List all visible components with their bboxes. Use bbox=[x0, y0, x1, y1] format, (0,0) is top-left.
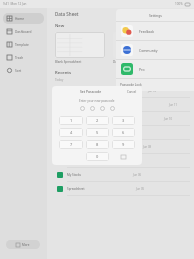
button[interactable]: Spreadsheet bbox=[55, 182, 190, 195]
staticText: Trash bbox=[15, 56, 24, 60]
other: Scan data from picture bbox=[134, 37, 150, 53]
button[interactable] bbox=[55, 32, 105, 58]
staticText: Spreadsheet bbox=[67, 187, 85, 191]
staticText: Untitled Spreadsheet bbox=[67, 89, 97, 93]
button[interactable]: Pro bbox=[116, 60, 194, 78]
staticText: 6 bbox=[122, 130, 125, 135]
button[interactable]: Sort bbox=[3, 65, 44, 76]
button[interactable]: 9 bbox=[112, 140, 135, 149]
staticText: Sort bbox=[15, 69, 22, 73]
staticText: Cancel bbox=[127, 90, 137, 94]
button[interactable]: Passcode Lock bbox=[116, 79, 194, 90]
button[interactable]: Feedback bbox=[116, 22, 194, 40]
staticText: My Stocks bbox=[67, 131, 82, 135]
button[interactable]: Template bbox=[3, 39, 44, 50]
button[interactable]: 1 bbox=[59, 116, 83, 125]
staticText: New bbox=[55, 23, 65, 29]
button[interactable]: 0 bbox=[86, 152, 109, 161]
button[interactable]: 3 bbox=[112, 116, 135, 125]
staticText: 8 bbox=[96, 142, 99, 147]
button[interactable]: My Stocks bbox=[55, 154, 190, 167]
staticText: Passcode Lock bbox=[120, 83, 142, 87]
staticText: Smartphone — Market Research bbox=[67, 117, 113, 121]
staticText: 7 bbox=[70, 142, 73, 147]
staticText: Dashboard bbox=[15, 30, 32, 34]
button[interactable]: Dashboard bbox=[3, 26, 44, 37]
staticText: 9 bbox=[122, 142, 125, 147]
staticText: Jun 06 bbox=[133, 173, 142, 177]
staticText: Set Passcode bbox=[80, 89, 102, 94]
staticText: From bbox=[122, 41, 130, 45]
button[interactable]: More bbox=[6, 240, 40, 249]
staticText: Template bbox=[15, 43, 29, 47]
staticText: Pro bbox=[139, 67, 145, 72]
staticText: Home bbox=[15, 17, 25, 21]
staticText: 3 bbox=[122, 118, 125, 123]
staticText: 100% bbox=[175, 2, 183, 6]
button[interactable]: My Stocks bbox=[55, 126, 190, 139]
button[interactable]: Sales report 2021 bbox=[55, 140, 190, 153]
staticText: Data Sheet bbox=[55, 11, 79, 17]
staticText: 1 bbox=[70, 118, 73, 123]
staticText: Recents bbox=[55, 70, 72, 76]
staticText: 0 bbox=[96, 154, 99, 159]
staticText: Jun 10 bbox=[164, 117, 173, 121]
staticText: Stationery parts report — Cubic tables bbox=[67, 103, 118, 107]
button[interactable]: 5 bbox=[86, 128, 109, 137]
button[interactable]: From bbox=[113, 32, 157, 58]
staticText: Today bbox=[55, 78, 64, 82]
staticText: 9:41 Mon 12 Jun bbox=[3, 2, 27, 6]
staticText: Feedback bbox=[139, 29, 155, 34]
staticText: Jun 11 bbox=[169, 103, 178, 107]
staticText: Blank Spreadsheet bbox=[55, 60, 82, 64]
staticText: More bbox=[22, 243, 30, 247]
button[interactable]: 7 bbox=[59, 140, 83, 149]
staticText: Sales report 2021 bbox=[67, 145, 92, 149]
staticText: 4 bbox=[70, 130, 73, 135]
staticText: Data from Picture bbox=[113, 60, 138, 64]
staticText: Community bbox=[139, 48, 158, 53]
button[interactable]: 4 bbox=[59, 128, 83, 137]
button[interactable]: Cancel bbox=[126, 89, 138, 95]
staticText: Settings bbox=[149, 13, 162, 18]
button[interactable]: 6 bbox=[112, 128, 135, 137]
staticText: Jun 05 bbox=[136, 187, 145, 191]
staticText: Enter your new passcode bbox=[79, 99, 115, 103]
staticText: 5 bbox=[96, 130, 99, 135]
button[interactable]: Delete bbox=[112, 152, 135, 161]
button[interactable]: Settings bbox=[116, 9, 194, 21]
button[interactable]: 8 bbox=[86, 140, 109, 149]
button[interactable]: Smartphone — Market Research bbox=[55, 112, 190, 125]
button[interactable]: Home bbox=[3, 13, 44, 24]
button[interactable]: Stationery parts report — Cubic tables bbox=[55, 98, 190, 111]
staticText: Jun 12 bbox=[148, 89, 157, 93]
button[interactable]: Trash bbox=[3, 52, 44, 63]
staticText: My Stocks bbox=[67, 173, 82, 177]
button[interactable]: My Stocks bbox=[55, 168, 190, 181]
staticText: 2 bbox=[96, 118, 99, 123]
staticText: Jun 08 bbox=[143, 145, 152, 149]
button[interactable]: Untitled Spreadsheet bbox=[55, 84, 190, 97]
button[interactable]: Community bbox=[116, 41, 194, 59]
button[interactable]: 2 bbox=[86, 116, 109, 125]
staticText: Jun 09 bbox=[133, 131, 142, 135]
staticText: Picture bbox=[121, 45, 131, 49]
